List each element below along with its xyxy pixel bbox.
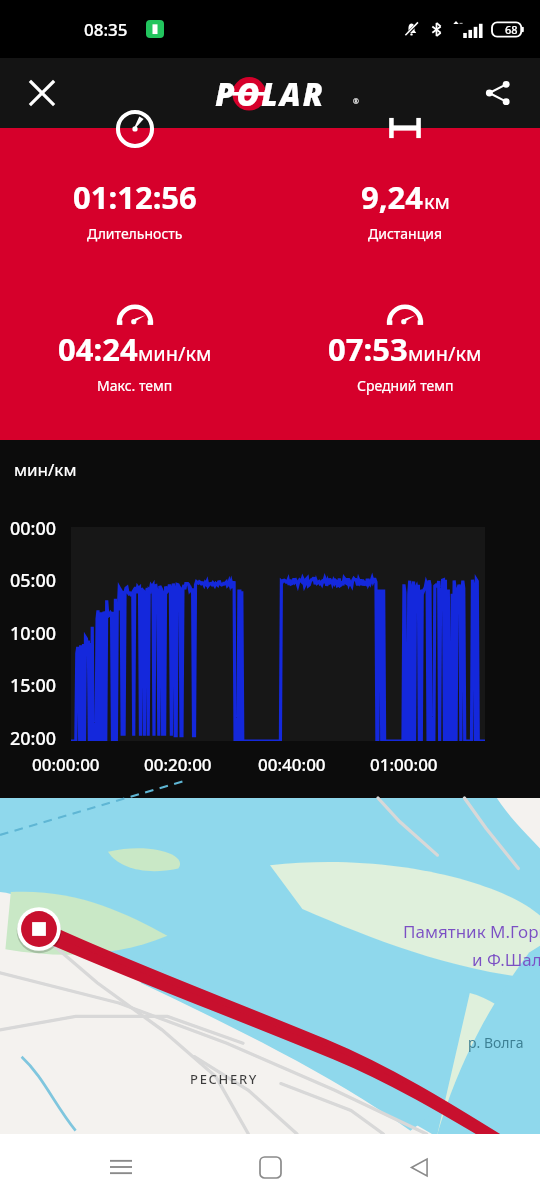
button[interactable]: Finish point (16, 906, 62, 952)
staticText: 9,24 (361, 176, 424, 218)
staticText: 10:00 (10, 621, 57, 646)
staticText: и Ф.Шаля (472, 948, 540, 971)
staticText: 01:00:00 (370, 753, 438, 776)
staticText: 15:00 (10, 673, 57, 698)
staticText: 00:00:00 (32, 753, 100, 776)
staticText: 01:12:56 (73, 176, 197, 218)
staticText: км (424, 188, 450, 215)
staticText: мин/км (408, 340, 482, 367)
button[interactable]: Close (22, 73, 62, 113)
staticText: мин/км (14, 458, 77, 481)
staticText: Длительность (87, 224, 183, 243)
button[interactable]: Home (242, 1139, 298, 1195)
staticText: 07:53 (328, 328, 408, 370)
staticText: р. Волга (468, 1033, 524, 1052)
staticText: мин/км (138, 340, 212, 367)
staticText: 20:00 (10, 726, 57, 751)
button[interactable]: 04:24 (0, 280, 270, 395)
staticText: 00:40:00 (258, 753, 326, 776)
staticText: 04:24 (58, 328, 138, 370)
button[interactable]: Back (391, 1139, 447, 1195)
button[interactable]: Recents (93, 1139, 149, 1195)
staticText: 68 (505, 22, 518, 37)
staticText: Дистанция (368, 224, 443, 243)
staticText: 00:20:00 (144, 753, 212, 776)
staticText: 08:35 (84, 18, 128, 41)
staticText: Средний темп (357, 376, 454, 395)
button[interactable]: 07:53 (270, 280, 540, 395)
staticText: 05:00 (10, 568, 57, 593)
staticText: Макс. темп (97, 376, 173, 395)
button[interactable]: Share (478, 73, 518, 113)
button[interactable]: 01:12:56 (0, 128, 270, 243)
staticText: 00:00 (10, 516, 57, 541)
staticText: PECHERY (190, 1070, 259, 1088)
staticText: Памятник М.Горь (403, 920, 540, 943)
staticText: ® (353, 97, 359, 107)
button[interactable]: 9,24 (270, 128, 540, 243)
staticText: POLAR (215, 73, 325, 113)
